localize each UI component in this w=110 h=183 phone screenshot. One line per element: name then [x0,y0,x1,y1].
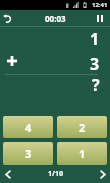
button[interactable]: Previous [0,165,16,183]
button[interactable]: Next [95,165,110,183]
button[interactable]: 2 [57,116,107,138]
staticText: 1 [90,28,100,50]
staticText: ? [92,74,100,96]
staticText: 1 [79,146,86,161]
staticText: 12:41 [92,1,108,9]
button[interactable]: 1 [57,142,107,165]
staticText: 4 [25,120,32,135]
staticText: 00:03 [45,13,66,24]
staticText: 3 [90,53,100,75]
staticText: 2 [79,120,86,135]
button[interactable]: Back [0,10,14,26]
staticText: 3 [25,146,32,161]
button[interactable]: Pause [90,10,110,26]
staticText: 1/10 [48,169,63,179]
button[interactable]: 4 [3,116,53,138]
button[interactable]: 3 [3,142,53,165]
